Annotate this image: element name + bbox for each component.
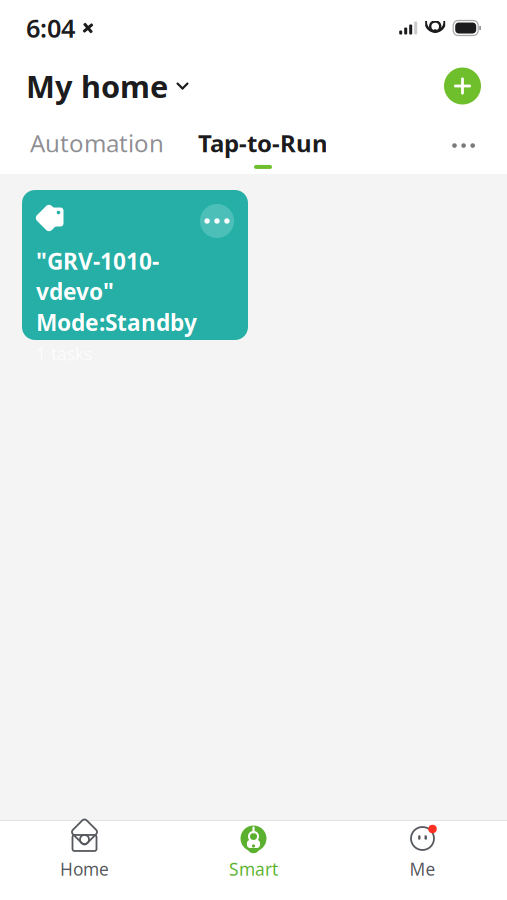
staticText: Me (409, 857, 435, 880)
staticText: Tap-to-Run (198, 127, 328, 159)
button[interactable]: Me (338, 821, 507, 884)
button[interactable]: "GRV-1010-vdevo" (22, 190, 248, 340)
button[interactable]: My home (26, 60, 190, 112)
button[interactable]: Automation (26, 127, 168, 169)
staticText: Mode:Standby (36, 307, 197, 337)
staticText: 6:04 (26, 11, 75, 45)
staticText: "GRV-1010-vdevo" (36, 246, 159, 306)
button[interactable]: Home (0, 821, 169, 884)
staticText: Home (60, 857, 109, 880)
button[interactable]: Tap-to-Run (194, 127, 332, 169)
button[interactable]: Add (444, 67, 481, 104)
staticText: My home (26, 66, 168, 106)
staticText: Smart (229, 857, 278, 880)
button[interactable]: More options (446, 127, 481, 157)
button[interactable]: Smart (169, 821, 338, 884)
staticText: Automation (30, 127, 164, 159)
